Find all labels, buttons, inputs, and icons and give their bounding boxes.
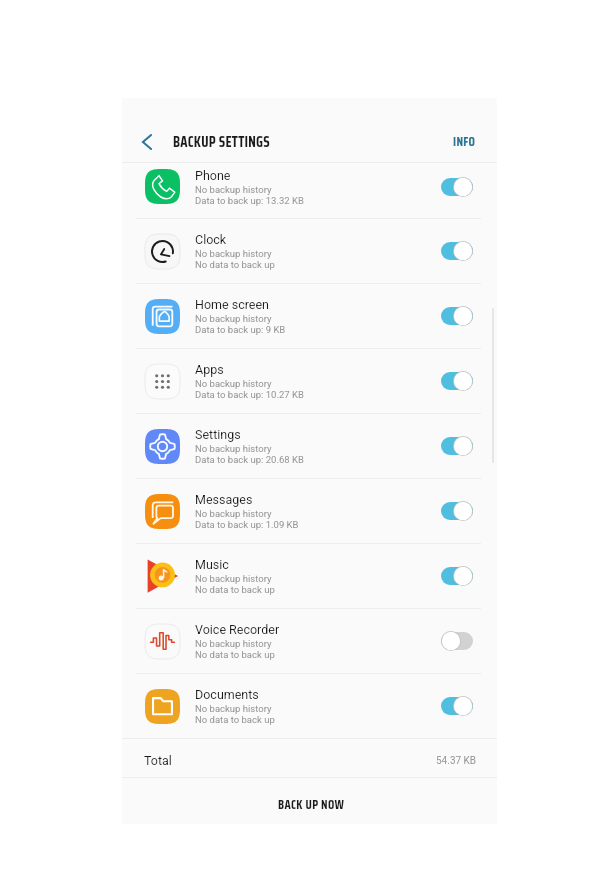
button[interactable]: Clock (122, 219, 497, 283)
staticText: 54.37 KB (436, 755, 477, 767)
staticText: Data to back up: 10.27 KB (195, 389, 304, 400)
staticText: Total (144, 753, 172, 768)
staticText: No backup history (195, 184, 272, 195)
staticText: Clock (195, 232, 227, 247)
staticText: Home screen (195, 297, 270, 312)
staticText: Messages (195, 492, 253, 507)
staticText: Apps (195, 362, 224, 377)
staticText: Music (195, 557, 229, 572)
button[interactable]: Settings (122, 414, 497, 478)
staticText: Voice Recorder (195, 622, 280, 637)
button[interactable]: On (439, 694, 475, 718)
staticText: Phone (195, 168, 231, 183)
button[interactable]: On (439, 434, 475, 458)
button[interactable]: Off (439, 629, 475, 653)
button[interactable]: BACK UP NOW (122, 778, 497, 823)
staticText: No backup history (195, 378, 272, 389)
staticText: INFO (453, 132, 476, 152)
staticText: No backup history (195, 703, 272, 714)
staticText: Data to back up: 1.09 KB (195, 519, 299, 530)
staticText: No backup history (195, 573, 272, 584)
staticText: Data to back up: 13.32 KB (195, 195, 304, 206)
button[interactable]: On (439, 239, 475, 263)
staticText: No data to back up (195, 259, 275, 270)
button[interactable]: Back (128, 122, 166, 162)
button[interactable]: Apps (122, 349, 497, 413)
staticText: Data to back up: 20.68 KB (195, 454, 304, 465)
staticText: No backup history (195, 248, 272, 259)
button[interactable]: On (439, 499, 475, 523)
button[interactable]: Music (122, 544, 497, 608)
staticText: No backup history (195, 508, 272, 519)
button[interactable]: Messages (122, 479, 497, 543)
staticText: No data to back up (195, 649, 275, 660)
staticText: No backup history (195, 638, 272, 649)
button[interactable]: Home screen (122, 284, 497, 348)
staticText: No data to back up (195, 714, 275, 725)
staticText: No backup history (195, 313, 272, 324)
staticText: BACK UP NOW (278, 795, 345, 815)
button[interactable]: INFO (432, 122, 497, 162)
staticText: No data to back up (195, 584, 275, 595)
button[interactable]: On (439, 175, 475, 199)
button[interactable]: On (439, 304, 475, 328)
staticText: Data to back up: 9 KB (195, 324, 286, 335)
staticText: BACKUP SETTINGS (173, 131, 271, 154)
button[interactable]: Voice Recorder (122, 609, 497, 673)
button[interactable]: Documents (122, 674, 497, 738)
staticText: Documents (195, 687, 259, 702)
button[interactable]: On (439, 564, 475, 588)
staticText: No backup history (195, 443, 272, 454)
staticText: Settings (195, 427, 241, 442)
button[interactable]: On (439, 369, 475, 393)
button[interactable]: Phone (122, 163, 497, 218)
